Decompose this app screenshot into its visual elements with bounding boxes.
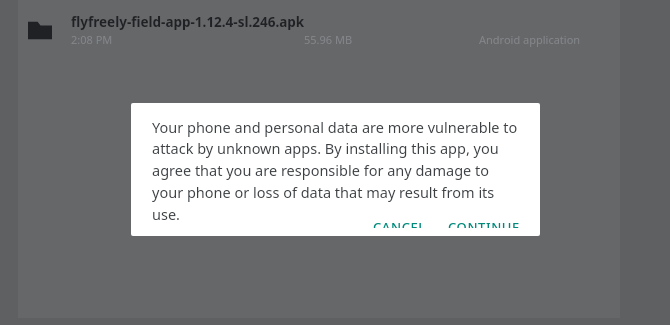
button[interactable]: CONTINUE xyxy=(437,210,540,236)
staticText: CONTINUE xyxy=(448,218,520,228)
button[interactable]: CANCEL xyxy=(362,210,437,236)
staticText: Your phone and personal data are more vu… xyxy=(152,117,520,224)
other: Folder xyxy=(28,19,52,41)
staticText: 2:08 PM xyxy=(71,32,113,47)
staticText: 55.96 MB xyxy=(304,32,353,47)
staticText: Android application xyxy=(479,32,581,47)
staticText: flyfreely-field-app-1.12.4-sl.246.apk xyxy=(71,13,305,31)
staticText: CANCEL xyxy=(373,218,426,228)
